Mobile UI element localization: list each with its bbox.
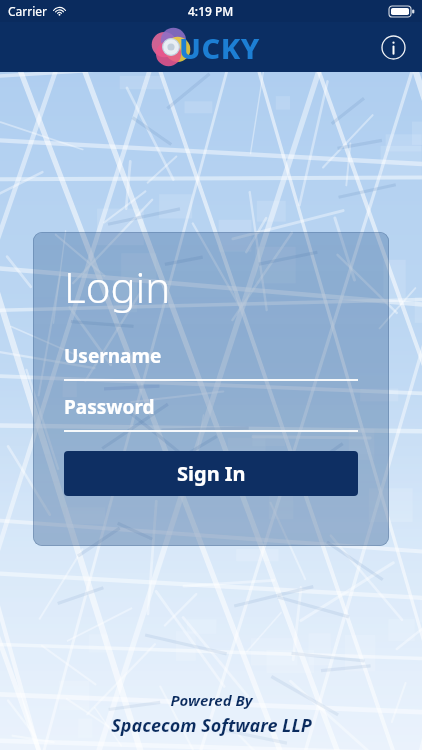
staticText: Spacecom Software LLP: [111, 713, 312, 738]
staticText: Password: [64, 394, 155, 420]
staticText: UCKY: [179, 28, 260, 67]
button[interactable]: Sign In: [64, 451, 358, 496]
staticText: Login: [64, 258, 171, 315]
staticText: Carrier: [8, 3, 48, 19]
staticText: Sign In: [177, 460, 246, 487]
button[interactable]: Username: [64, 343, 358, 381]
staticText: Username: [64, 343, 162, 369]
staticText: 4:19 PM: [188, 3, 234, 19]
staticText: Powered By: [170, 690, 253, 710]
button[interactable]: Password: [64, 394, 358, 432]
button[interactable]: Information: [376, 30, 410, 64]
